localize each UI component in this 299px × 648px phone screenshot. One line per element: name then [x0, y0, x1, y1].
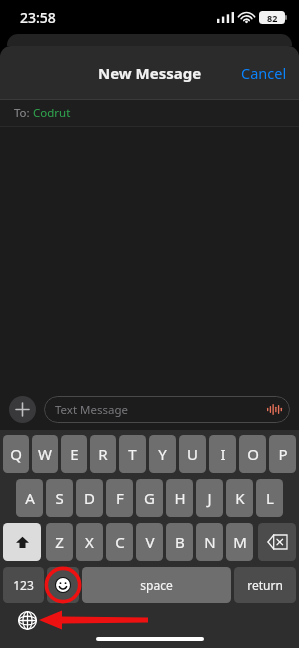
- staticText: Codrut: [33, 105, 71, 121]
- button[interactable]: 123: [3, 567, 44, 603]
- button[interactable]: K: [226, 479, 253, 517]
- button[interactable]: J: [196, 479, 223, 517]
- staticText: K: [235, 488, 245, 508]
- button[interactable]: H: [166, 479, 193, 517]
- staticText: F: [116, 488, 124, 508]
- button[interactable]: C: [106, 523, 133, 561]
- button[interactable]: Switch keyboard language: [14, 607, 40, 633]
- staticText: L: [266, 488, 274, 508]
- button[interactable]: Z: [46, 523, 73, 561]
- button[interactable]: B: [166, 523, 193, 561]
- button[interactable]: I: [209, 435, 236, 473]
- staticText: N: [204, 532, 216, 552]
- staticText: Q: [10, 444, 22, 464]
- staticText: 123: [13, 577, 34, 593]
- staticText: D: [84, 488, 95, 508]
- staticText: A: [25, 488, 35, 508]
- staticText: Text Message: [55, 402, 129, 418]
- button[interactable]: Q: [3, 435, 29, 473]
- staticText: space: [140, 577, 173, 593]
- staticText: J: [207, 488, 212, 508]
- button[interactable]: Shift: [3, 523, 41, 561]
- button[interactable]: V: [136, 523, 163, 561]
- button[interactable]: T: [119, 435, 146, 473]
- button[interactable]: Text Message: [44, 396, 290, 423]
- button[interactable]: O: [239, 435, 266, 473]
- staticText: S: [55, 488, 64, 508]
- button[interactable]: Record audio message: [266, 401, 283, 418]
- button[interactable]: D: [76, 479, 103, 517]
- staticText: X: [85, 532, 94, 552]
- staticText: E: [70, 444, 79, 464]
- button[interactable]: G: [136, 479, 163, 517]
- staticText: W: [38, 444, 52, 464]
- staticText: M: [233, 532, 247, 552]
- staticText: Z: [55, 532, 64, 552]
- button[interactable]: X: [76, 523, 103, 561]
- button[interactable]: M: [226, 523, 253, 561]
- button[interactable]: U: [179, 435, 206, 473]
- staticText: T: [128, 444, 137, 464]
- staticText: R: [98, 444, 108, 464]
- button[interactable]: P: [269, 435, 296, 473]
- button[interactable]: To:: [0, 100, 299, 126]
- staticText: 23:58: [20, 8, 56, 27]
- button[interactable]: Backspace: [258, 523, 296, 561]
- button[interactable]: Add attachment: [9, 396, 36, 423]
- staticText: H: [174, 488, 186, 508]
- staticText: G: [144, 488, 155, 508]
- button[interactable]: space: [82, 567, 231, 603]
- staticText: Y: [158, 444, 167, 464]
- staticText: Cancel: [241, 63, 287, 83]
- button[interactable]: S: [46, 479, 73, 517]
- staticText: To:: [14, 105, 33, 121]
- button[interactable]: Y: [149, 435, 176, 473]
- button[interactable]: L: [256, 479, 283, 517]
- staticText: return: [247, 577, 283, 593]
- staticText: C: [115, 532, 125, 552]
- button[interactable]: return: [234, 567, 296, 603]
- staticText: I: [220, 444, 226, 464]
- staticText: 82: [267, 12, 278, 24]
- button[interactable]: Emoji keyboard: [47, 567, 79, 603]
- button[interactable]: N: [196, 523, 223, 561]
- staticText: V: [145, 532, 155, 552]
- staticText: New Message: [98, 63, 202, 83]
- button[interactable]: A: [16, 479, 43, 517]
- button[interactable]: R: [90, 435, 116, 473]
- button[interactable]: Cancel: [229, 53, 299, 93]
- button[interactable]: F: [106, 479, 133, 517]
- button[interactable]: E: [61, 435, 87, 473]
- button[interactable]: W: [32, 435, 58, 473]
- staticText: U: [187, 444, 198, 464]
- staticText: P: [278, 444, 288, 464]
- staticText: B: [175, 532, 185, 552]
- staticText: O: [247, 444, 259, 464]
